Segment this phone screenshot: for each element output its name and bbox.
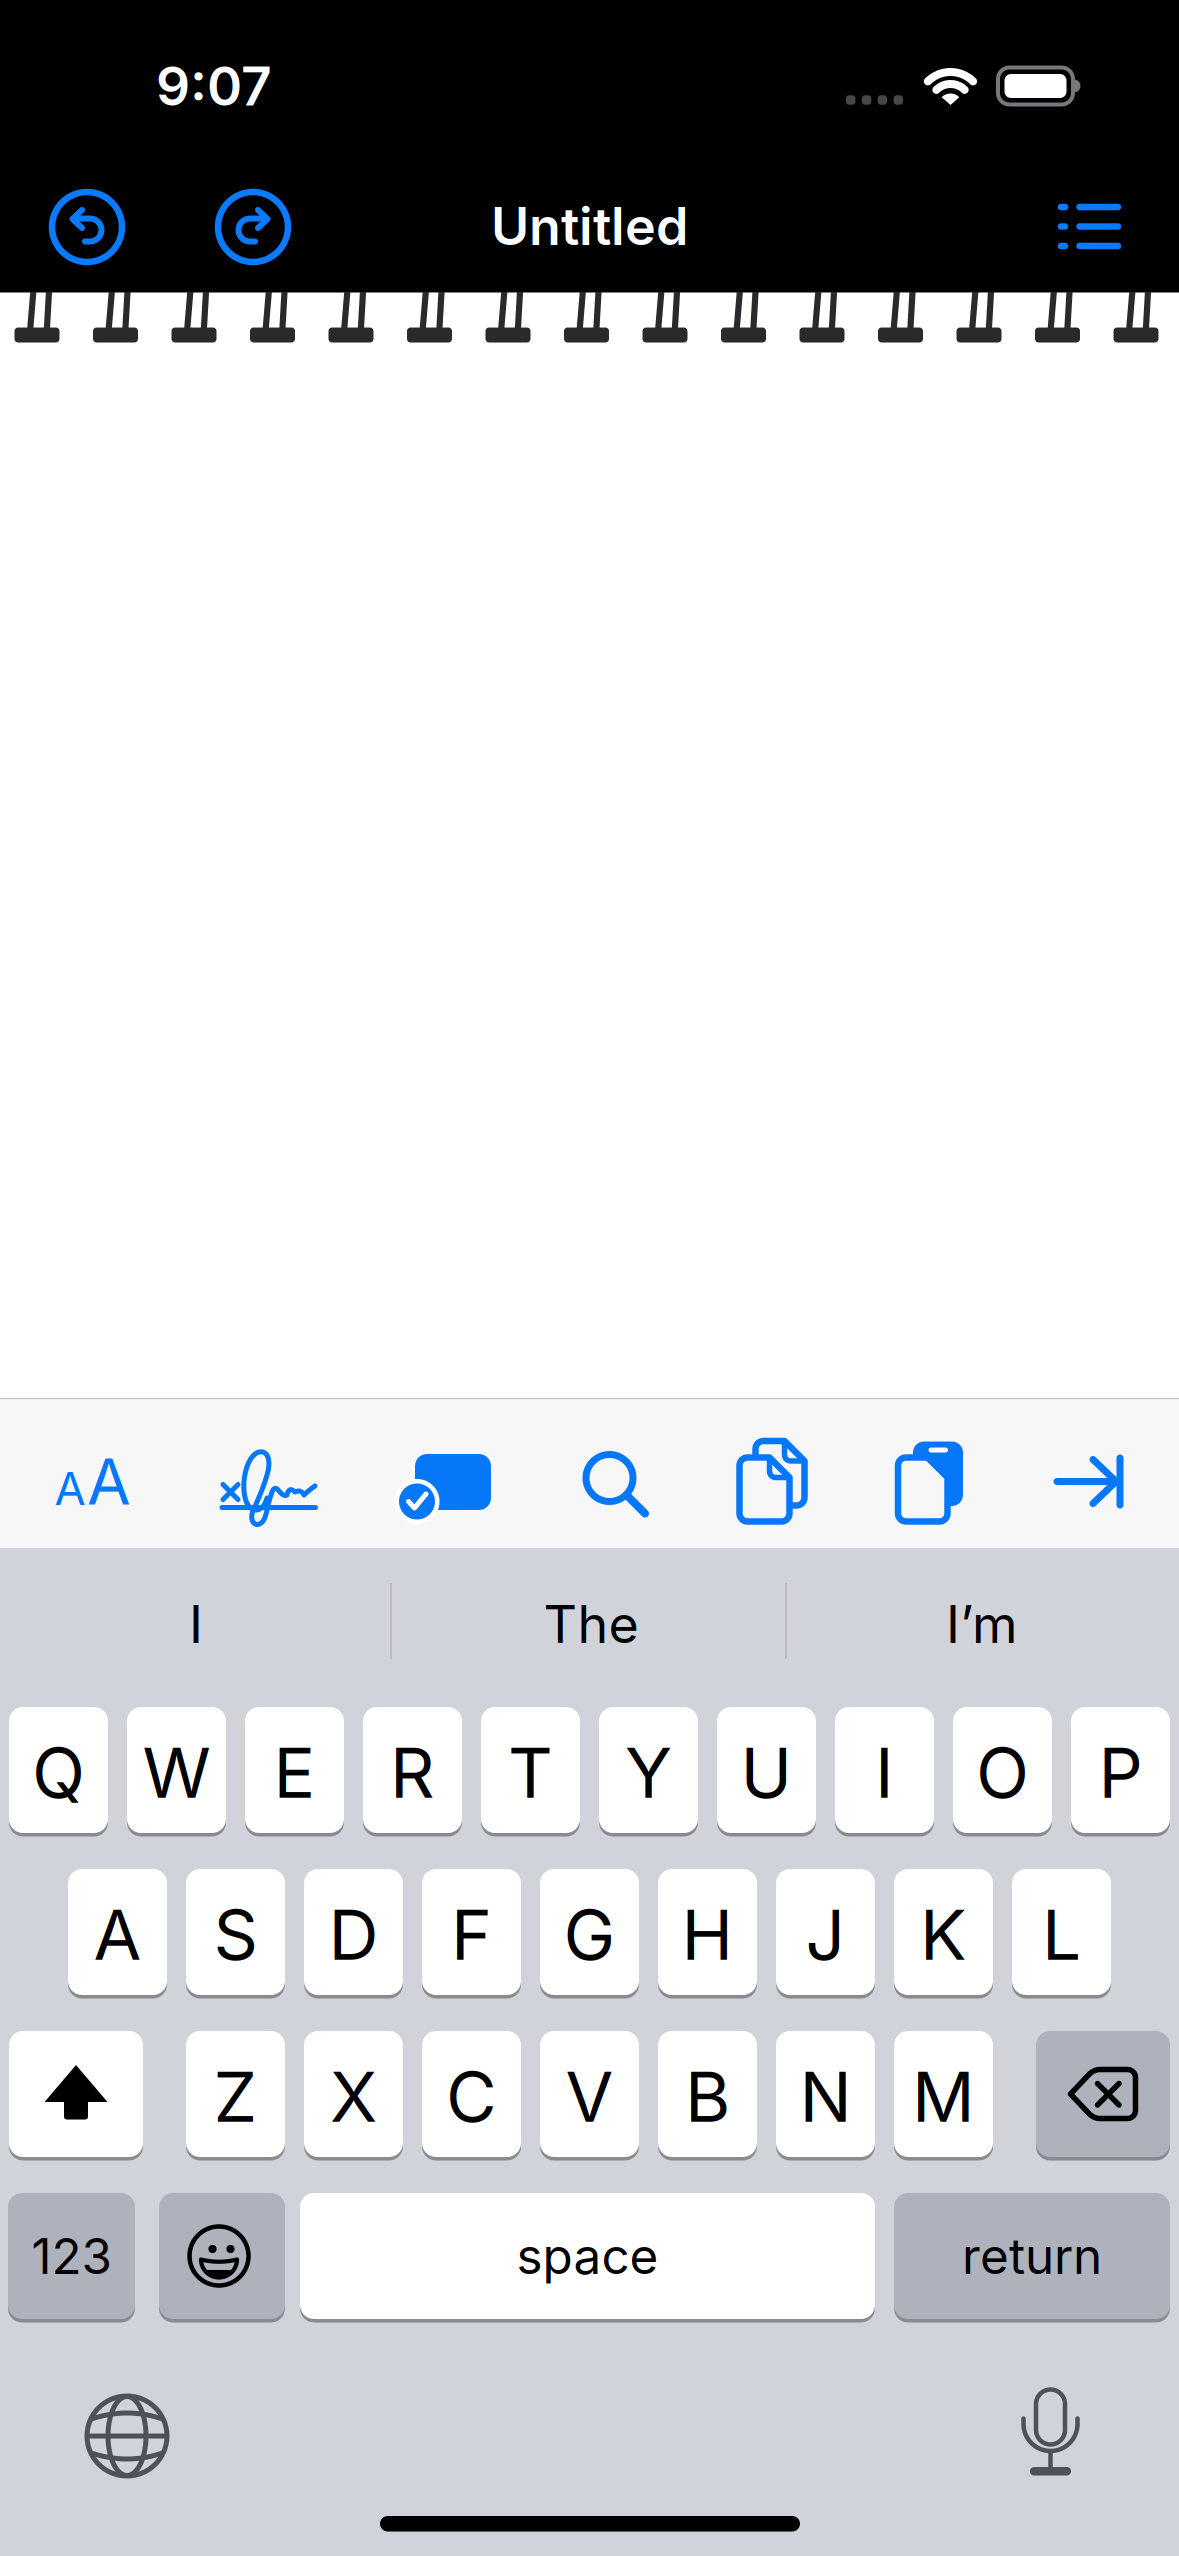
button[interactable]: H [658, 1869, 757, 1995]
button[interactable]: N [776, 2031, 875, 2157]
staticText: V [565, 2055, 613, 2138]
staticText: W [142, 1731, 210, 1814]
button[interactable]: Y [599, 1707, 698, 1833]
button[interactable]: A [68, 1869, 167, 1995]
button[interactable]: Paste [891, 1435, 970, 1528]
button[interactable]: J [776, 1869, 875, 1995]
button[interactable]: K [894, 1869, 993, 1995]
staticText: H [681, 1893, 733, 1976]
button[interactable]: Card [395, 1445, 497, 1525]
staticText: Y [625, 1731, 672, 1814]
button[interactable]: S [186, 1869, 285, 1995]
staticText: U [740, 1731, 792, 1814]
button[interactable]: G [540, 1869, 639, 1995]
staticText: Untitled [491, 194, 688, 257]
button[interactable]: Shift [9, 2031, 143, 2157]
staticText: I [875, 1731, 894, 1814]
button[interactable]: R [363, 1707, 462, 1833]
button[interactable]: return [894, 2193, 1170, 2319]
staticText: K [920, 1893, 967, 1976]
staticText: C [446, 2055, 497, 2138]
staticText: Q [32, 1731, 85, 1814]
button[interactable]: M [894, 2031, 993, 2157]
staticText: X [330, 2055, 377, 2138]
button[interactable]: Emoji [159, 2193, 285, 2319]
button[interactable]: L [1012, 1869, 1111, 1995]
button[interactable]: Text style [50, 1438, 140, 1515]
button[interactable]: 123 [8, 2193, 135, 2319]
button[interactable]: O [953, 1707, 1052, 1833]
staticText: R [390, 1731, 435, 1814]
button[interactable]: Note list [1058, 203, 1122, 249]
staticText: T [508, 1731, 553, 1814]
button[interactable]: Undo [47, 187, 127, 267]
staticText: F [451, 1893, 492, 1976]
button[interactable]: Dismiss keyboard [1050, 1450, 1130, 1512]
staticText: S [213, 1893, 257, 1976]
button[interactable]: U [717, 1707, 816, 1833]
staticText: B [685, 2055, 730, 2138]
button[interactable]: B [658, 2031, 757, 2157]
button[interactable]: Copy [733, 1435, 812, 1528]
button[interactable]: F [422, 1869, 521, 1995]
button[interactable]: E [245, 1707, 344, 1833]
button[interactable]: V [540, 2031, 639, 2157]
staticText: space [516, 2226, 658, 2286]
button[interactable]: Next keyboard [79, 2388, 175, 2484]
button[interactable]: I [6, 1569, 386, 1679]
button[interactable]: Z [186, 2031, 285, 2157]
button[interactable]: Q [9, 1707, 108, 1833]
staticText: 9:07 [156, 54, 272, 118]
button[interactable]: Search [580, 1448, 652, 1520]
button[interactable]: Redo [213, 187, 293, 267]
staticText: A [93, 1893, 141, 1976]
staticText: The [543, 1592, 638, 1655]
staticText: return [962, 2226, 1102, 2286]
button[interactable]: P [1071, 1707, 1170, 1833]
button[interactable]: I [835, 1707, 934, 1833]
staticText: D [328, 1893, 378, 1976]
staticText: J [805, 1893, 845, 1976]
staticText: G [563, 1893, 615, 1976]
staticText: I [189, 1592, 203, 1655]
button[interactable]: W [127, 1707, 226, 1833]
staticText: Z [213, 2055, 257, 2138]
button[interactable]: D [304, 1869, 403, 1995]
staticText: A [87, 1443, 131, 1520]
button[interactable]: T [481, 1707, 580, 1833]
button[interactable]: X [304, 2031, 403, 2157]
button[interactable]: Signature [215, 1443, 320, 1528]
button[interactable]: Delete [1036, 2031, 1170, 2157]
staticText: N [799, 2055, 851, 2138]
button[interactable]: The [401, 1569, 781, 1679]
staticText: A [54, 1461, 85, 1516]
staticText: 123 [31, 2226, 111, 2286]
button[interactable]: space [300, 2193, 875, 2319]
staticText: M [912, 2055, 975, 2138]
staticText: E [273, 1731, 315, 1814]
staticText: L [1042, 1893, 1081, 1976]
button[interactable]: I’m [792, 1569, 1172, 1679]
button[interactable]: Dictate [1018, 2388, 1082, 2480]
staticText: P [1098, 1731, 1142, 1814]
staticText: I’m [946, 1592, 1018, 1655]
staticText: O [976, 1731, 1029, 1814]
button[interactable]: C [422, 2031, 521, 2157]
